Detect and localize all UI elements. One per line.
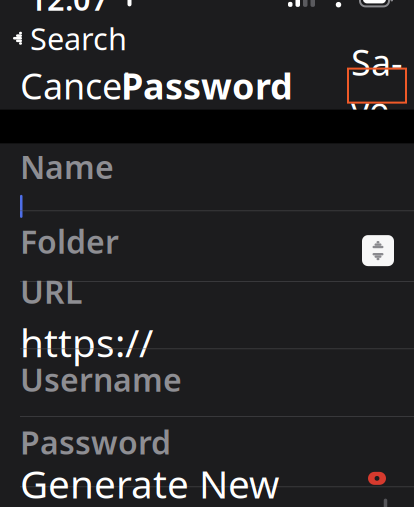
staticText: Password [20,421,171,463]
staticText: https:// [20,317,153,368]
staticText: Generate New Password [20,458,279,507]
button[interactable]: Choose folder [362,235,394,266]
staticText: Cancel [20,62,131,109]
staticText: URL [20,270,82,313]
staticText: Username [20,358,182,401]
button[interactable]: Show password [360,465,394,491]
staticText: Password [121,62,293,109]
button[interactable]: Generate New Password [0,487,414,507]
staticText: Save [351,38,403,133]
staticText: Search [30,18,127,59]
staticText: 12:07 [29,0,109,19]
button[interactable]: Cancel [0,51,151,120]
staticText: Folder [20,220,119,263]
button[interactable]: Save [348,69,406,103]
staticText: Name [20,145,114,188]
button[interactable]: Search [0,15,139,62]
